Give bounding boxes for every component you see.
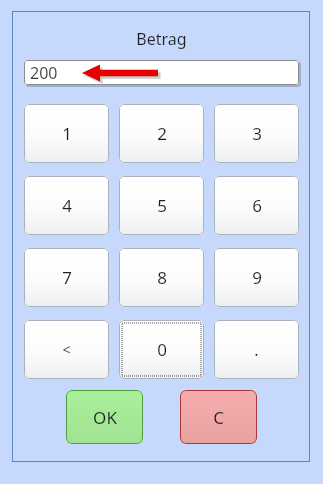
- staticText: OK: [93, 406, 117, 429]
- button[interactable]: 0: [119, 320, 204, 379]
- other: Eingabefeld Hinweis: [78, 60, 168, 86]
- staticText: 8: [157, 266, 167, 289]
- staticText: <: [62, 340, 71, 359]
- button[interactable]: 2: [119, 104, 204, 163]
- button[interactable]: 9: [214, 248, 299, 307]
- staticText: .: [254, 339, 259, 361]
- staticText: Betrag: [136, 28, 187, 50]
- staticText: 4: [62, 194, 72, 217]
- button[interactable]: .: [214, 320, 299, 379]
- button[interactable]: 5: [119, 176, 204, 235]
- button[interactable]: OK: [66, 390, 143, 444]
- staticText: 0: [157, 338, 167, 361]
- staticText: 9: [252, 266, 262, 289]
- button[interactable]: 8: [119, 248, 204, 307]
- staticText: 200: [30, 62, 58, 84]
- button[interactable]: 6: [214, 176, 299, 235]
- staticText: 3: [252, 122, 262, 145]
- staticText: 6: [252, 194, 262, 217]
- button[interactable]: 7: [24, 248, 109, 307]
- staticText: 5: [157, 194, 167, 217]
- staticText: C: [213, 406, 224, 429]
- button[interactable]: <: [24, 320, 109, 379]
- button[interactable]: 4: [24, 176, 109, 235]
- staticText: 2: [157, 122, 167, 145]
- button[interactable]: C: [180, 390, 257, 444]
- button[interactable]: 1: [24, 104, 109, 163]
- button[interactable]: 3: [214, 104, 299, 163]
- staticText: 7: [62, 266, 72, 289]
- button[interactable]: 200: [24, 60, 299, 85]
- staticText: 1: [62, 122, 72, 145]
